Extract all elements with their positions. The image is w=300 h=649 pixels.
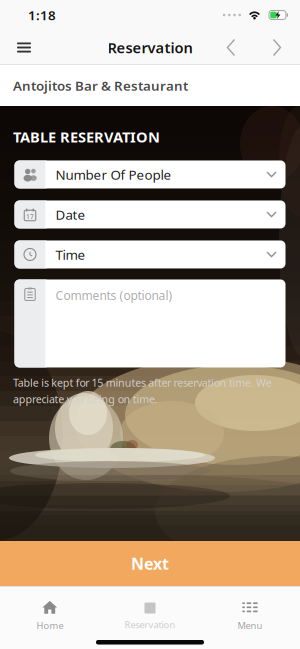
staticText: Time: [55, 246, 85, 263]
button[interactable]: Home: [0, 594, 100, 638]
staticText: Reservation: [107, 38, 192, 57]
button[interactable]: Next: [270, 30, 284, 65]
staticText: Menu: [237, 619, 262, 632]
staticText: Reservation: [124, 619, 175, 631]
staticText: Home: [36, 619, 63, 632]
staticText: TABLE RESERVATION: [13, 127, 160, 146]
staticText: Table is kept for 15 minutes after reser…: [13, 375, 272, 390]
staticText: Antojitos Bar & Restaurant: [13, 77, 188, 94]
staticText: Number Of People: [55, 166, 171, 183]
staticText: appreciate you being on time.: [13, 392, 158, 406]
button[interactable]: 17: [14, 200, 285, 228]
button[interactable]: Comments (optional): [14, 279, 285, 367]
button[interactable]: Number Of People: [14, 160, 285, 188]
button[interactable]: Previous: [224, 30, 238, 65]
staticText: Date: [55, 206, 85, 223]
staticText: Comments (optional): [55, 287, 172, 303]
button[interactable]: Reservation: [100, 594, 200, 638]
staticText: 1:18: [28, 6, 56, 24]
button[interactable]: Next: [0, 541, 300, 586]
button[interactable]: Time: [14, 240, 285, 268]
staticText: Next: [131, 553, 169, 574]
button[interactable]: Menu: [200, 594, 300, 638]
button[interactable]: Menu: [7, 30, 41, 65]
staticText: 17: [26, 212, 34, 221]
